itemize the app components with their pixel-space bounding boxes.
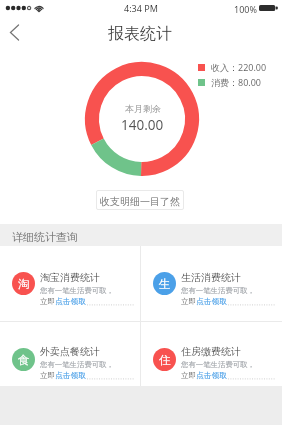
button[interactable]: 住 xyxy=(141,322,282,386)
staticText: 收入：220.00 xyxy=(211,61,267,73)
staticText: 食 xyxy=(18,353,30,367)
staticText: 您有一笔生活费可取， xyxy=(181,360,255,369)
staticText: 您有一笔生活费可取， xyxy=(40,360,114,369)
button[interactable]: 食 xyxy=(0,322,140,386)
staticText: 立即点击领取 xyxy=(181,371,227,381)
staticText: 生活消费统计 xyxy=(181,271,241,284)
button[interactable]: 淘 xyxy=(0,246,140,321)
staticText: 立即点击领取 xyxy=(181,297,227,307)
staticText: 收支明细一目了然 xyxy=(100,195,180,208)
staticText: 住 xyxy=(159,353,171,367)
staticText: 立即点击领取 xyxy=(40,297,86,307)
staticText: 生 xyxy=(159,277,171,291)
staticText: 4:34 PM xyxy=(124,2,158,14)
staticText: 消费：80.00 xyxy=(211,76,262,88)
staticText: 报表统计 xyxy=(108,24,172,44)
button[interactable]: 收支明细一目了然 xyxy=(96,190,184,210)
button[interactable]: 生 xyxy=(141,246,282,321)
staticText: 淘宝消费统计 xyxy=(40,271,100,284)
button[interactable]: Back xyxy=(2,18,30,46)
staticText: 您有一笔生活费可取， xyxy=(181,286,255,295)
staticText: 详细统计查询 xyxy=(12,230,78,244)
staticText: 淘 xyxy=(18,277,30,291)
staticText: 外卖点餐统计 xyxy=(40,345,100,358)
staticText: 100% xyxy=(234,3,257,15)
staticText: 立即点击领取 xyxy=(40,371,86,381)
staticText: 本月剩余 xyxy=(125,103,161,114)
staticText: 住房缴费统计 xyxy=(181,345,241,358)
staticText: 您有一笔生活费可取， xyxy=(40,286,114,295)
staticText: 140.00 xyxy=(121,116,164,134)
